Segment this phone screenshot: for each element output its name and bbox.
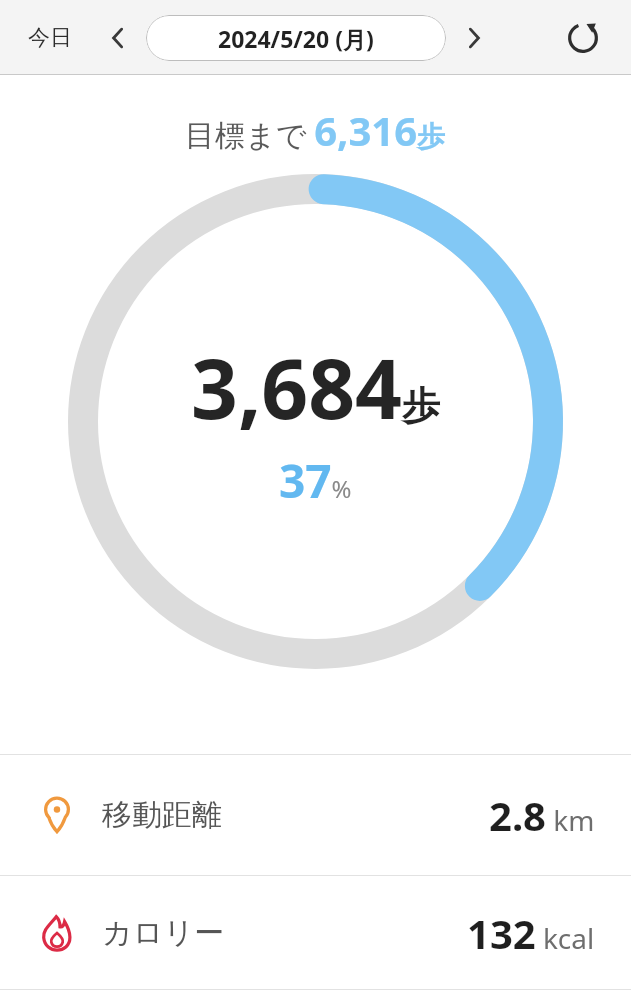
staticText: 37% <box>279 449 352 512</box>
button[interactable]: Refresh <box>557 12 609 64</box>
staticText: 今日 <box>28 24 72 52</box>
button[interactable]: 今日 <box>22 18 78 58</box>
staticText: 移動距離 <box>102 796 222 834</box>
button[interactable]: 2024/5/20 (月) <box>146 15 446 61</box>
staticText: 132 kcal <box>467 906 595 960</box>
button[interactable]: Next day <box>452 16 496 60</box>
other: Calories <box>36 912 78 954</box>
button[interactable]: Calories <box>0 876 631 989</box>
button[interactable]: Distance <box>0 755 631 875</box>
button[interactable]: Previous day <box>96 16 140 60</box>
other: Distance <box>36 794 78 836</box>
staticText: 目標まで 6,316歩 <box>185 103 446 157</box>
staticText: カロリー <box>102 914 225 952</box>
staticText: 2024/5/20 (月) <box>218 23 374 54</box>
staticText: 3,684歩 <box>191 331 440 443</box>
staticText: 2.8 km <box>489 788 595 842</box>
